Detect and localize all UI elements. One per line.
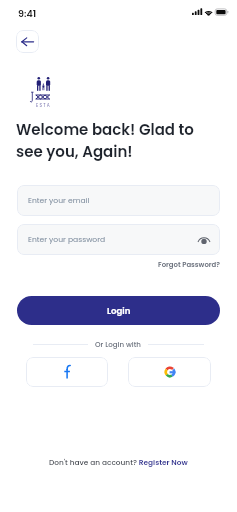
- staticText: 9:41: [18, 7, 37, 20]
- staticText: Forgot Password?: [158, 260, 220, 270]
- button[interactable]: Back: [16, 30, 39, 53]
- button[interactable]: Show password: [197, 233, 211, 247]
- button[interactable]: Don't have an account? Register Now: [0, 455, 237, 469]
- button[interactable]: Forgot Password?: [0, 259, 220, 271]
- staticText: Or Login with: [95, 340, 141, 350]
- button[interactable]: Enter your email: [17, 185, 220, 216]
- staticText: Enter your email: [28, 195, 90, 206]
- staticText: E S T A: [36, 102, 50, 108]
- staticText: Enter your password: [28, 234, 106, 245]
- button[interactable]: Sign in with Facebook: [26, 357, 108, 387]
- button[interactable]: Sign in with Google: [128, 357, 211, 387]
- staticText: Don't have an account? Register Now: [49, 457, 188, 467]
- button[interactable]: Enter your password: [17, 224, 220, 255]
- button[interactable]: Login: [17, 296, 220, 325]
- staticText: Welcome back! Glad to see you, Again!: [16, 119, 194, 163]
- staticText: Login: [107, 305, 131, 317]
